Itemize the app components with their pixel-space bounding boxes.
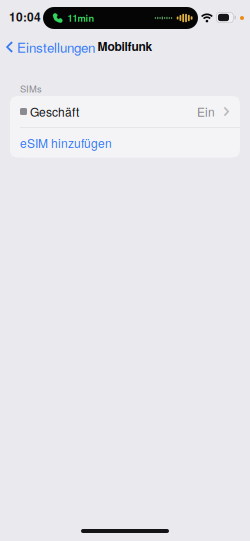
staticText: Geschäft [30, 103, 79, 120]
staticText: Ein [197, 103, 215, 120]
staticText: Mobilfunk [97, 38, 152, 54]
staticText: 11min [67, 11, 94, 24]
staticText: Einstellungen [17, 38, 95, 56]
staticText: eSIM hinzufügen [20, 134, 112, 151]
button[interactable]: Aktiver Anruf, 11 Minuten [43, 7, 198, 29]
staticText: SIMs [20, 82, 42, 95]
button[interactable]: Geschäft [10, 96, 240, 127]
staticText: 10:04 [9, 8, 41, 25]
button[interactable]: eSIM hinzufügen [10, 128, 240, 158]
button[interactable]: Einstellungen, zurück [0, 34, 95, 56]
